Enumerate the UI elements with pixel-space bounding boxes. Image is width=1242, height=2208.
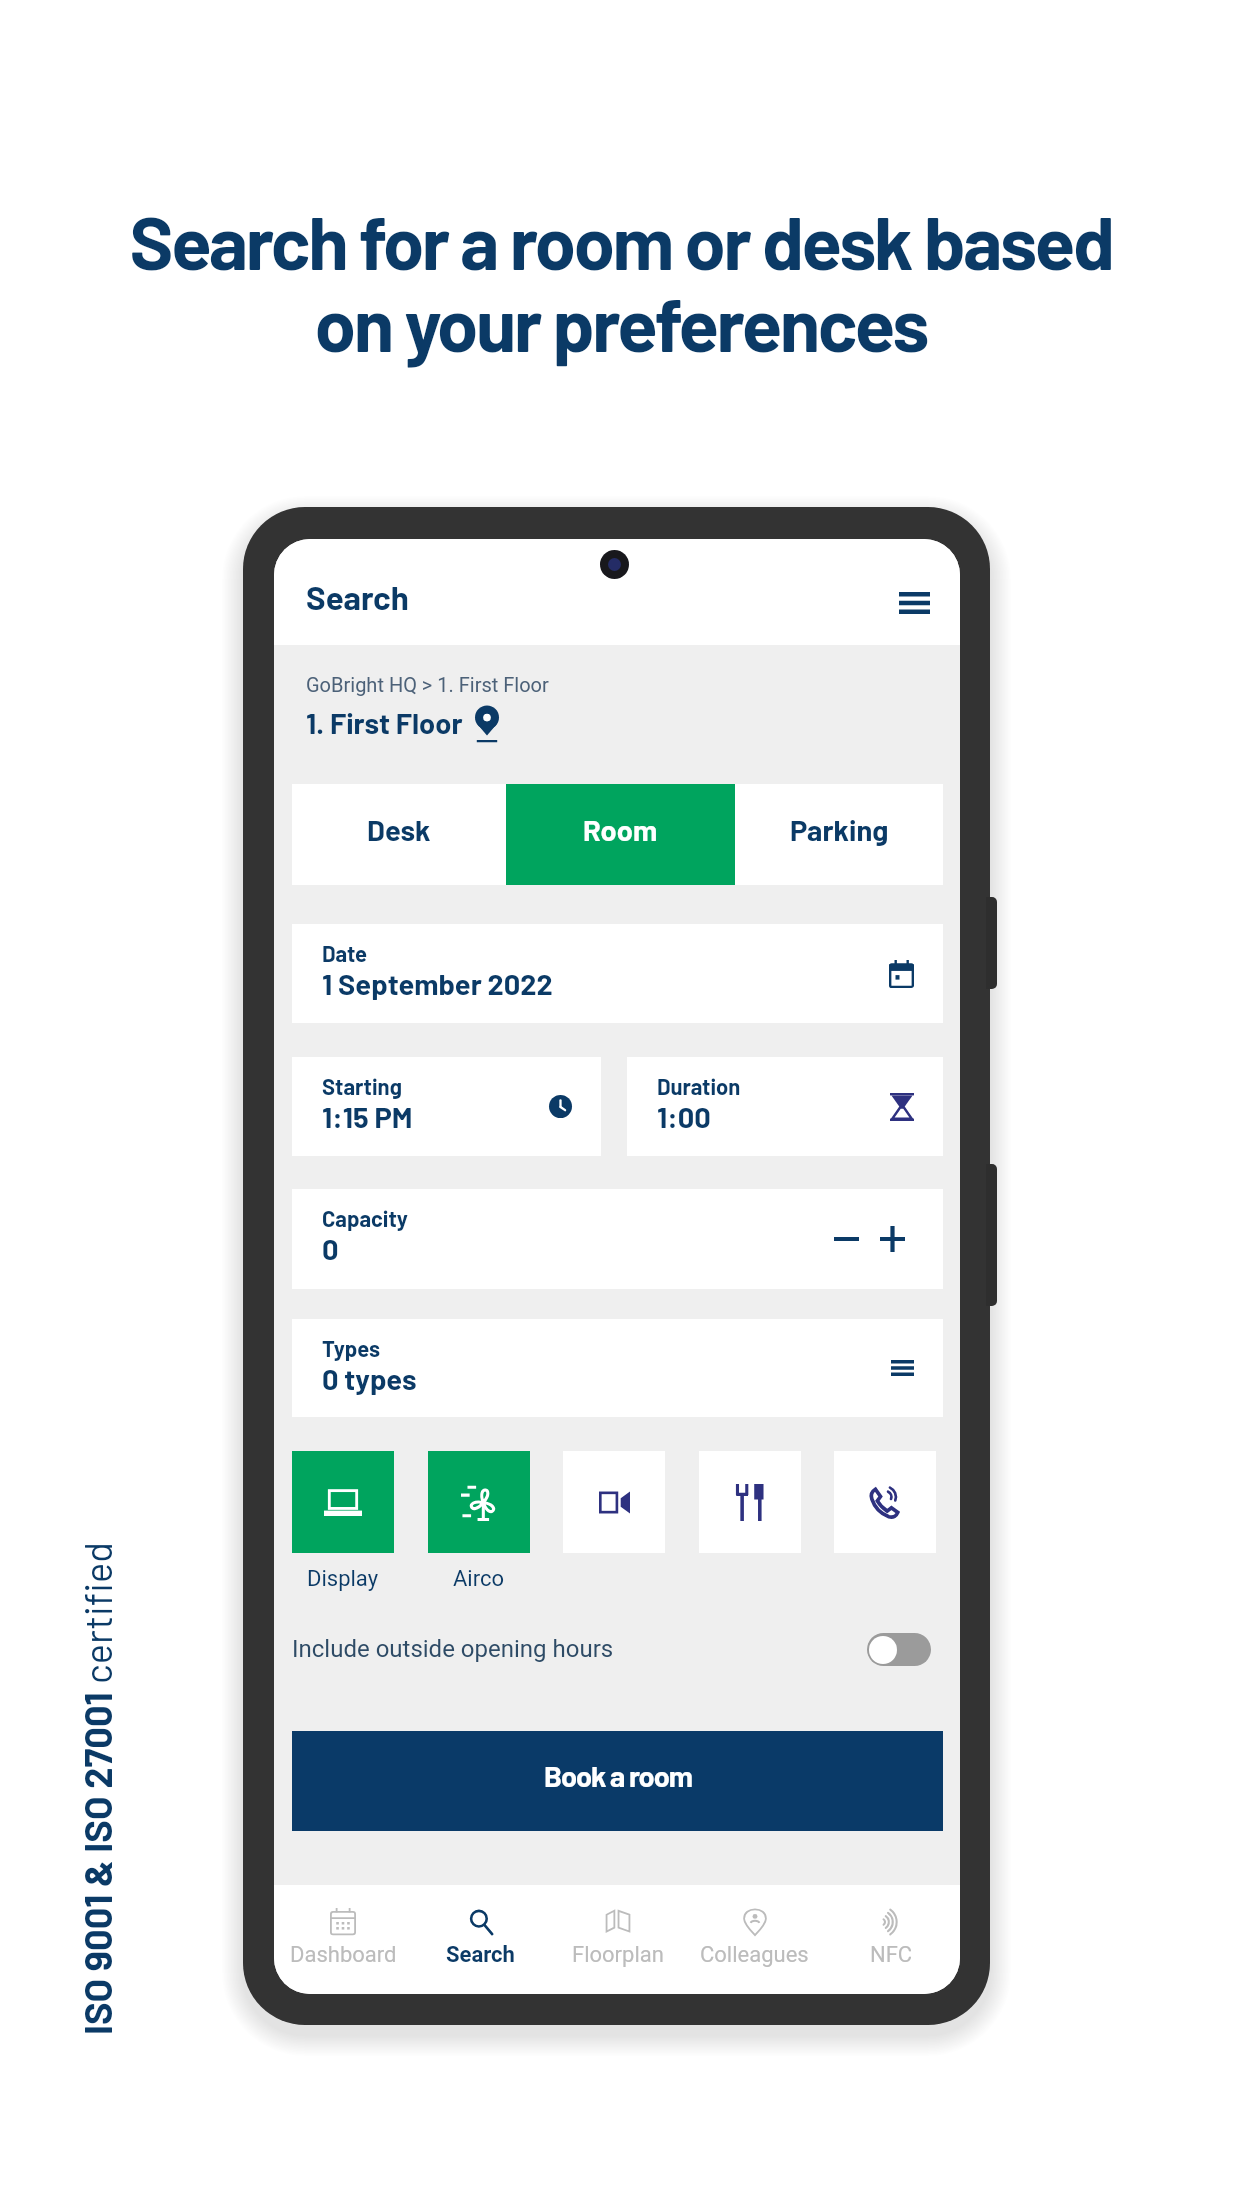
button[interactable]: Include outside opening hours <box>292 1620 943 1678</box>
staticText: NFC <box>870 1942 913 1968</box>
button[interactable]: NFC <box>823 1885 960 1994</box>
staticText: Floorplan <box>572 1942 664 1968</box>
staticText: Room <box>583 812 658 847</box>
staticText: certified <box>74 1541 118 1684</box>
button[interactable]: Dashboard <box>274 1885 412 1994</box>
button[interactable]: Room <box>506 784 735 885</box>
button[interactable]: Airco <box>428 1451 530 1553</box>
staticText: Airco <box>453 1566 505 1592</box>
staticText: Types <box>322 1335 381 1361</box>
staticText: 1:15 PM <box>322 1099 413 1134</box>
staticText: Display <box>307 1566 379 1592</box>
staticText: Dashboard <box>290 1942 397 1968</box>
button[interactable]: Display <box>292 1451 394 1553</box>
button[interactable]: Catering <box>699 1451 801 1553</box>
button[interactable]: Choose start time <box>292 1057 601 1156</box>
staticText: 0 <box>322 1231 339 1266</box>
staticText: Capacity <box>322 1205 408 1231</box>
staticText: Search for a room or desk based <box>0 196 1242 285</box>
staticText: Search <box>446 1942 515 1968</box>
button[interactable]: Colleagues <box>686 1885 823 1994</box>
staticText: Desk <box>367 812 431 847</box>
button[interactable]: Choose types <box>292 1319 943 1417</box>
staticText: Include outside opening hours <box>292 1635 614 1663</box>
staticText: 1. First Floor <box>306 705 463 740</box>
staticText: ISO 9001 & ISO 27001 <box>74 1684 118 2035</box>
button[interactable]: Show on floorplan <box>472 705 502 743</box>
button[interactable]: Conference phone <box>834 1451 936 1553</box>
button[interactable]: Floorplan <box>549 1885 686 1994</box>
staticText: GoBright HQ > 1. First Floor <box>306 673 549 696</box>
button[interactable]: Choose date <box>292 924 943 1023</box>
button[interactable]: Decrease capacity <box>824 1217 868 1261</box>
button[interactable]: Desk <box>292 784 506 885</box>
button[interactable]: Choose duration <box>627 1057 943 1156</box>
staticText: Colleagues <box>700 1942 809 1968</box>
staticText: 1 September 2022 <box>322 966 553 1001</box>
staticText: Search <box>306 577 409 617</box>
staticText: Book a room <box>544 1758 692 1793</box>
button[interactable]: Video conferencing <box>563 1451 665 1553</box>
staticText: Parking <box>790 812 889 847</box>
staticText: 0 types <box>322 1361 417 1396</box>
staticText: Duration <box>657 1073 741 1099</box>
button[interactable]: Parking <box>735 784 943 885</box>
button[interactable]: Book a room <box>292 1731 943 1831</box>
staticText: 1:00 <box>657 1099 711 1134</box>
button[interactable]: Search <box>412 1885 549 1994</box>
button[interactable]: Increase capacity <box>870 1217 914 1261</box>
staticText: Date <box>322 940 368 966</box>
staticText: on your preferences <box>0 278 1242 367</box>
staticText: Starting <box>322 1073 402 1099</box>
button[interactable]: Open menu <box>887 578 941 628</box>
